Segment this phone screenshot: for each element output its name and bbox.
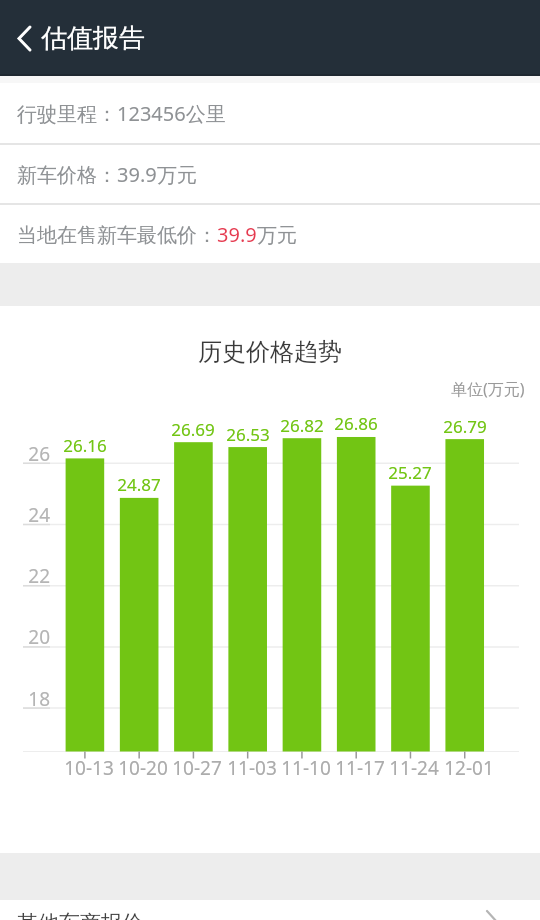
staticText: 行驶里程：123456公里 bbox=[17, 100, 226, 127]
staticText: 24 bbox=[6, 502, 50, 528]
staticText: 25.27 bbox=[375, 461, 445, 484]
staticText: 26.53 bbox=[213, 423, 283, 446]
button[interactable]: 当地在售新车最低价：39.9万元 bbox=[0, 205, 540, 263]
staticText: 26.79 bbox=[430, 415, 500, 438]
staticText: 12-01 bbox=[434, 755, 504, 781]
staticText: 10-13 bbox=[54, 755, 124, 781]
staticText: 26.86 bbox=[321, 412, 391, 435]
button[interactable]: 新车价格：39.9万元 bbox=[0, 145, 540, 203]
staticText: 新车价格：39.9万元 bbox=[17, 161, 197, 188]
button[interactable]: 行驶里程：123456公里 bbox=[0, 83, 540, 143]
staticText: 其他车商报价 bbox=[17, 910, 143, 920]
button[interactable]: 其他车商报价 bbox=[0, 900, 540, 920]
staticText: 20 bbox=[6, 624, 50, 650]
staticText: 11-24 bbox=[379, 755, 449, 781]
staticText: 11-03 bbox=[217, 755, 287, 781]
staticText: 10-20 bbox=[108, 755, 178, 781]
button[interactable]: 估值报告 bbox=[16, 22, 145, 55]
staticText: 10-27 bbox=[162, 755, 232, 781]
staticText: 当地在售新车最低价：39.9万元 bbox=[17, 221, 297, 248]
staticText: 26.69 bbox=[158, 418, 228, 441]
staticText: 24.87 bbox=[104, 473, 174, 496]
staticText: 历史价格趋势 bbox=[198, 337, 342, 367]
staticText: 估值报告 bbox=[41, 22, 145, 55]
staticText: 18 bbox=[6, 686, 50, 712]
staticText: 11-10 bbox=[271, 755, 341, 781]
staticText: 26.16 bbox=[50, 434, 120, 457]
staticText: 22 bbox=[6, 563, 50, 589]
staticText: 26.82 bbox=[267, 414, 337, 437]
staticText: 单位(万元) bbox=[451, 378, 525, 400]
staticText: 11-17 bbox=[325, 755, 395, 781]
staticText: 26 bbox=[6, 441, 50, 467]
